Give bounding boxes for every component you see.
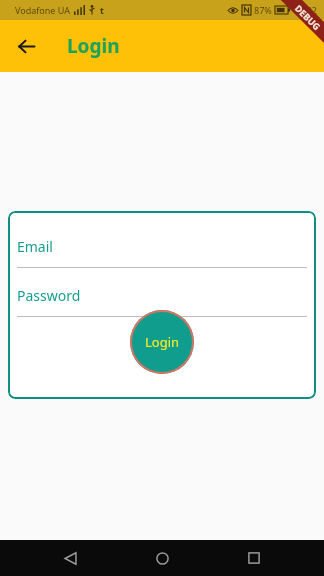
staticText: 22:32 — [294, 4, 318, 16]
staticText: Login — [145, 333, 180, 351]
button[interactable]: Back — [48, 540, 92, 576]
staticText: Email — [17, 237, 53, 256]
button[interactable]: Login — [130, 310, 194, 374]
staticText: 87% — [254, 4, 272, 16]
staticText: Login — [67, 33, 120, 59]
staticText: t — [100, 4, 104, 16]
staticText: Vodafone UA — [15, 4, 71, 16]
button[interactable]: Home — [140, 540, 184, 576]
button[interactable]: Password — [8, 268, 316, 317]
staticText: DEBUG — [293, 2, 323, 32]
button[interactable]: Recent apps — [232, 540, 276, 576]
button[interactable]: Email — [8, 211, 316, 268]
staticText: Password — [17, 286, 81, 305]
button[interactable]: Back — [9, 29, 43, 63]
